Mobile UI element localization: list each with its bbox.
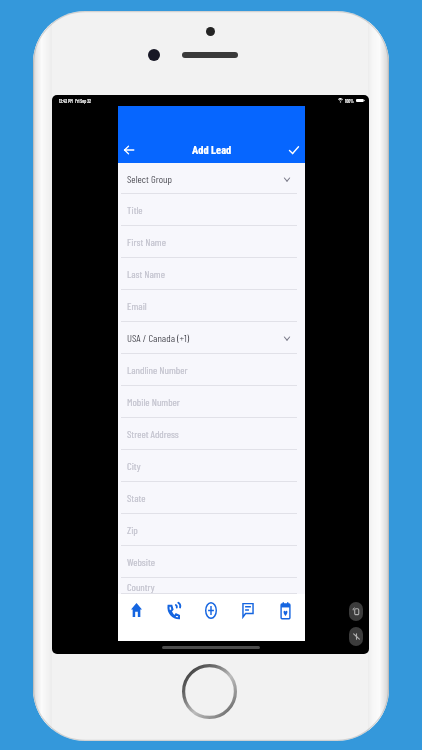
staticText: First Name [127,235,166,248]
staticText: Select Group [127,172,172,185]
staticText: 12:42 PM Fri Sep 22 [59,98,91,104]
button[interactable]: Add [194,594,231,641]
staticText: USA / Canada (+1) [127,331,190,344]
button[interactable]: Select Group [118,163,305,194]
staticText: Street Address [127,427,179,440]
staticText: Website [127,555,156,568]
staticText: Zip [127,523,138,536]
button[interactable]: Title [118,194,305,226]
button[interactable]: Email [118,290,305,322]
staticText: Country [127,580,155,593]
staticText: 100% [345,98,354,104]
button[interactable]: Calls [156,594,194,641]
button[interactable]: Resize [349,627,363,646]
button[interactable]: Home [118,594,156,641]
button[interactable]: Country [118,578,305,594]
button[interactable]: Landline Number [118,354,305,386]
button[interactable]: Zip [118,514,305,546]
staticText: Last Name [127,267,165,280]
staticText: Title [127,203,143,216]
staticText: Email [127,299,147,312]
button[interactable]: Website [118,546,305,578]
button[interactable]: City [118,450,305,482]
button[interactable]: Street Address [118,418,305,450]
staticText: State [127,491,146,504]
staticText: Landline Number [127,363,188,376]
button[interactable]: State [118,482,305,514]
button[interactable]: Calendar [268,594,305,641]
button[interactable]: First Name [118,226,305,258]
button[interactable]: Rotate [349,602,363,621]
button[interactable]: Home button [182,664,237,719]
button[interactable]: USA / Canada (+1) [118,322,305,354]
button[interactable]: Messages [231,594,268,641]
button[interactable]: Mobile Number [118,386,305,418]
button[interactable]: Save [283,139,305,161]
staticText: City [127,459,141,472]
staticText: Add Lead [192,144,232,156]
staticText: Mobile Number [127,395,180,408]
button[interactable]: Back [118,139,140,161]
button[interactable]: Last Name [118,258,305,290]
